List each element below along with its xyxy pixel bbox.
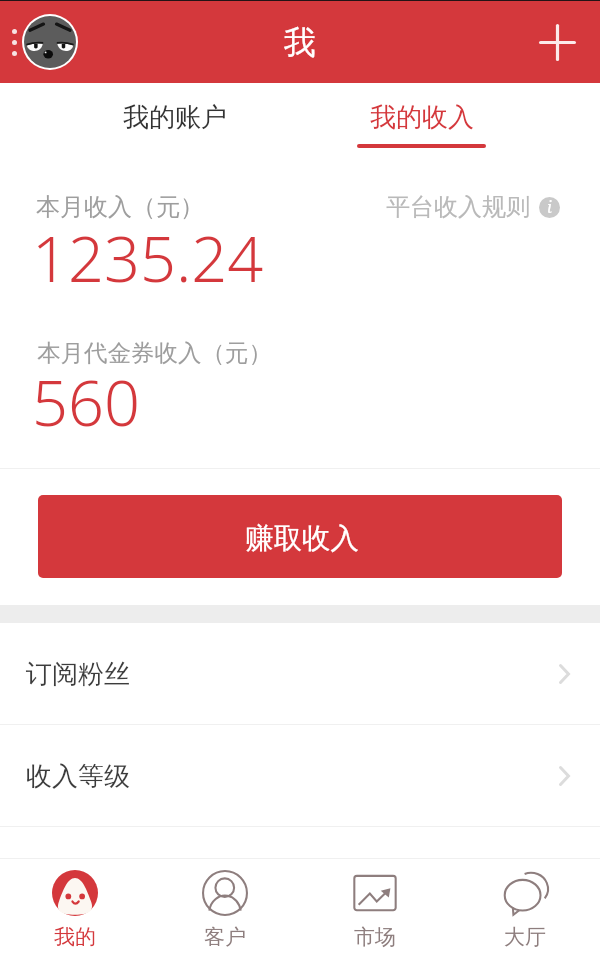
staticText: 我的 (54, 924, 96, 950)
staticText: 大厅 (504, 924, 546, 950)
staticText: 我的收入 (370, 101, 474, 134)
staticText: 1235.24 (32, 215, 264, 301)
staticText: 平台收入规则 (386, 192, 530, 222)
button[interactable]: 大厅 (450, 859, 600, 950)
staticText: 本月收入（元） (36, 192, 204, 222)
button[interactable]: 平台收入规则 (386, 192, 560, 222)
staticText: 本月代金券收入（元） (37, 338, 272, 368)
button[interactable]: 我的 (0, 859, 150, 950)
staticText: 赚取收入 (245, 521, 359, 557)
button[interactable]: 我的收入 (298, 83, 545, 116)
button[interactable]: 客户 (150, 859, 300, 950)
button[interactable]: 订阅粉丝 (0, 623, 600, 725)
staticText: 我 (284, 22, 316, 62)
button[interactable]: 收入等级 (0, 725, 600, 827)
staticText: 订阅粉丝 (26, 658, 130, 691)
staticText: 560 (32, 359, 140, 445)
staticText: 收入等级 (26, 760, 130, 793)
staticText: 客户 (204, 924, 246, 950)
button[interactable]: 市场 (300, 859, 450, 950)
staticText: 我的账户 (123, 101, 227, 134)
staticText: i (547, 197, 552, 217)
button[interactable]: 赚取收入 (38, 495, 562, 578)
button[interactable]: 我的账户 (51, 83, 298, 116)
button[interactable]: Add (528, 13, 586, 71)
button[interactable]: Profile (22, 14, 78, 70)
staticText: 市场 (354, 924, 396, 950)
